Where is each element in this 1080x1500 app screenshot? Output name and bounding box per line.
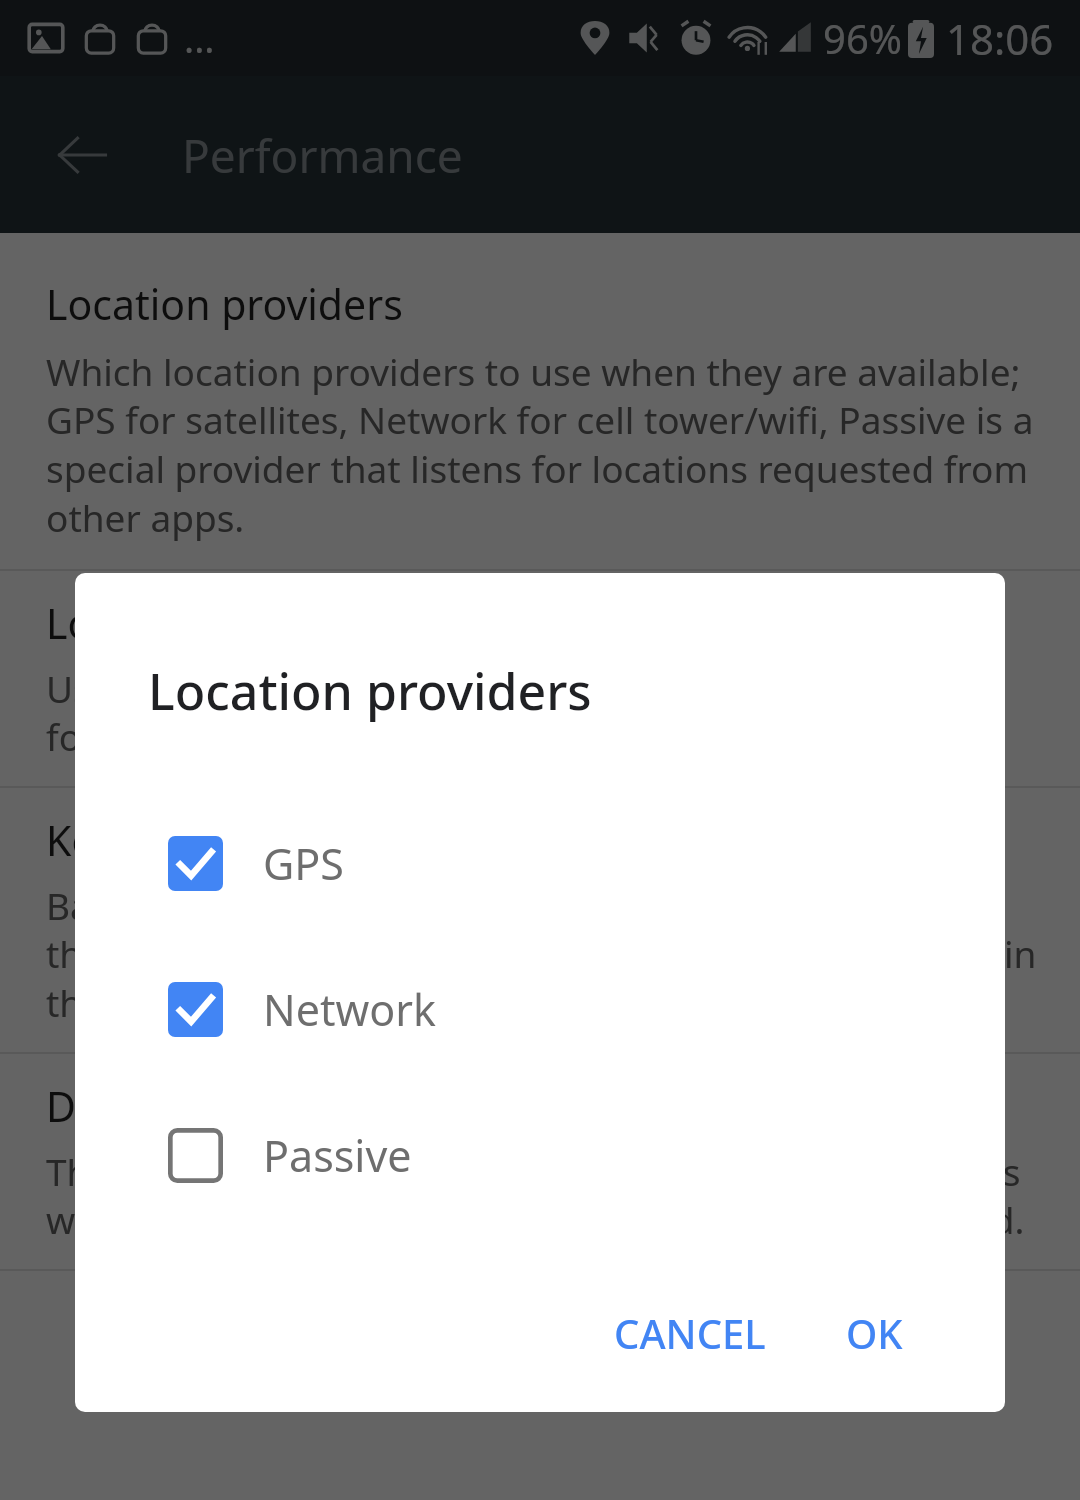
button[interactable]: Keep-alive [0, 788, 1080, 1052]
staticText: CANCEL [614, 1306, 766, 1360]
button[interactable]: Discard inaccurate points [0, 1054, 1080, 1269]
staticText: Which location providers to use when the… [46, 346, 1040, 543]
staticText: Network [263, 980, 436, 1039]
staticText: Battery usage can be greatly reduced whe… [46, 880, 1040, 1028]
staticText: Location providers [148, 657, 592, 725]
staticText: Discard inaccurate points [46, 1078, 533, 1134]
staticText: Use a bigger value to reduce battery usa… [46, 663, 1040, 762]
button[interactable]: OK [822, 1284, 927, 1382]
button[interactable]: CANCEL [590, 1284, 790, 1382]
staticText: Performance [182, 124, 463, 187]
button[interactable]: Network [75, 936, 1005, 1082]
staticText: Location providers [46, 276, 403, 332]
staticText: This will remove inaccurate points on im… [46, 1146, 1040, 1245]
button[interactable]: Back [42, 115, 122, 195]
staticText: Passive [263, 1126, 412, 1185]
button[interactable]: Location update interval [0, 571, 1080, 786]
staticText: ... [184, 12, 215, 64]
button[interactable]: GPS [75, 790, 1005, 936]
staticText: OK [846, 1306, 903, 1360]
staticText: GPS [263, 834, 344, 893]
staticText: Keep-alive [46, 812, 245, 868]
button[interactable]: Passive [75, 1082, 1005, 1228]
staticText: Location update interval [46, 595, 514, 651]
staticText: 18:06 [946, 10, 1054, 67]
staticText: 96% [823, 11, 902, 65]
